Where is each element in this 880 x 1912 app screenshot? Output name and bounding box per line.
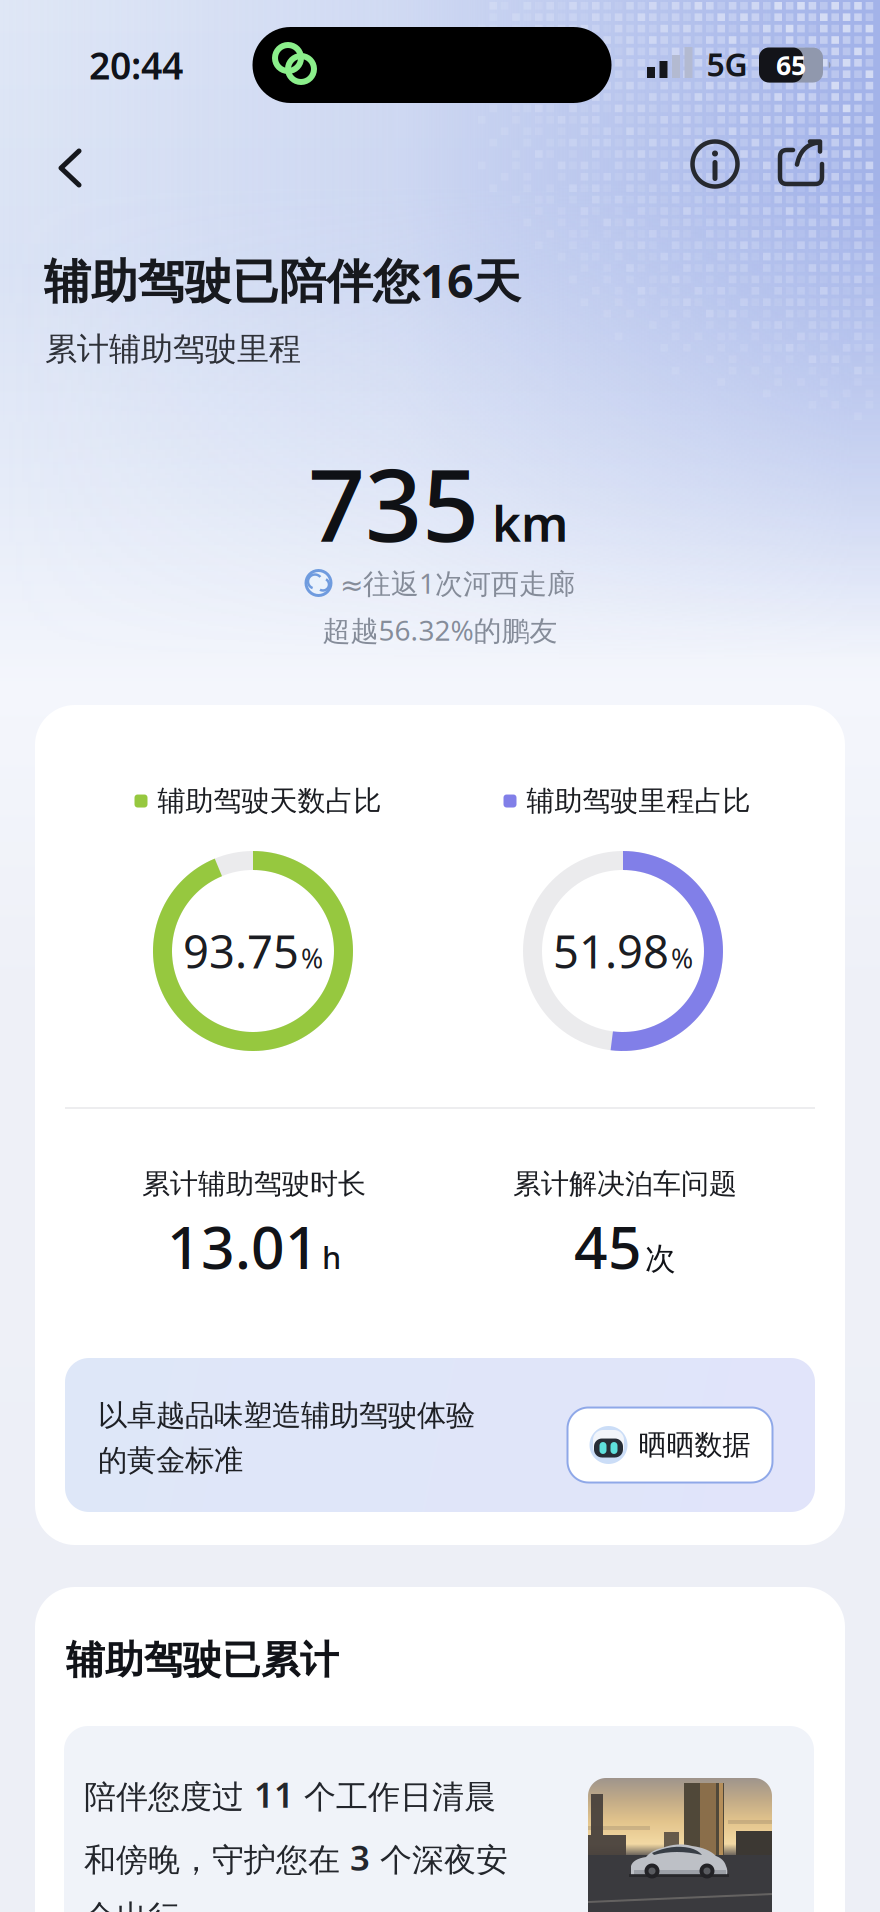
staticText: 辅助驾驶天数占比 bbox=[157, 784, 381, 818]
staticText: 5G bbox=[706, 43, 747, 85]
staticText: 735 bbox=[308, 437, 479, 569]
staticText: 13.01 bbox=[167, 1207, 319, 1285]
button[interactable]: 晒晒数据 bbox=[567, 1407, 772, 1482]
staticText: ≈往返1次河西走廊 bbox=[340, 564, 575, 602]
staticText: 累计解决泊车问题 bbox=[513, 1167, 737, 1201]
staticText: 辅助驾驶已累计 bbox=[66, 1636, 339, 1684]
button[interactable]: Back bbox=[40, 138, 100, 198]
staticText: 93.75 bbox=[183, 921, 299, 981]
staticText: 的黄金标准 bbox=[98, 1442, 243, 1478]
staticText: 累计辅助驾驶里程 bbox=[45, 329, 301, 369]
staticText: % bbox=[671, 940, 693, 976]
staticText: 全出行 bbox=[84, 1897, 180, 1912]
staticText: 65 bbox=[776, 47, 806, 83]
staticText: 和傍晚，守护您在 3 个深夜安 bbox=[84, 1834, 508, 1880]
button[interactable]: Share bbox=[775, 135, 831, 191]
staticText: 陪伴您度过 11 个工作日清晨 bbox=[84, 1771, 496, 1817]
staticText: 累计辅助驾驶时长 bbox=[142, 1167, 366, 1201]
staticText: 20:44 bbox=[89, 40, 183, 90]
staticText: 辅助驾驶已陪伴您16天 bbox=[44, 249, 521, 311]
button[interactable]: Info bbox=[687, 136, 743, 192]
staticText: 晒晒数据 bbox=[638, 1428, 750, 1462]
staticText: h bbox=[322, 1237, 341, 1277]
staticText: km bbox=[492, 490, 568, 555]
staticText: 超越56.32%的鹏友 bbox=[322, 611, 557, 649]
staticText: 以卓越品味塑造辅助驾驶体验 bbox=[98, 1397, 475, 1433]
staticText: 51.98 bbox=[553, 921, 669, 981]
staticText: 45 bbox=[574, 1207, 642, 1285]
staticText: 辅助驾驶里程占比 bbox=[526, 784, 750, 818]
staticText: 次 bbox=[645, 1240, 676, 1278]
staticText: % bbox=[301, 940, 323, 976]
